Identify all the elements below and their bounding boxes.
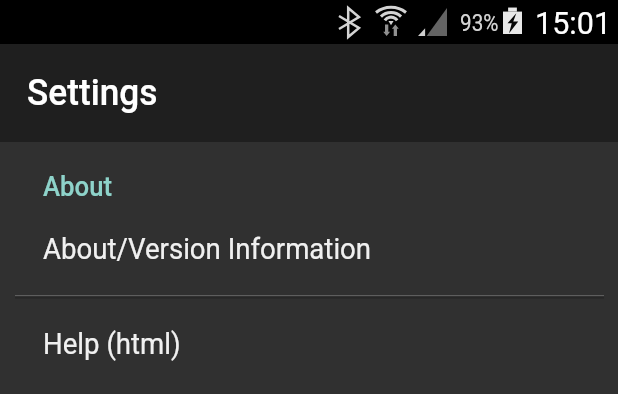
other: Wi-Fi connected (376, 7, 406, 36)
staticText: About/Version Information (43, 232, 371, 266)
button[interactable]: Help (html) (0, 299, 618, 386)
staticText: Help (html) (43, 327, 181, 361)
staticText: Settings (27, 71, 157, 114)
staticText: 15:01 (535, 5, 612, 41)
button[interactable]: About/Version Information (0, 208, 618, 295)
staticText: About (43, 171, 112, 203)
other: Battery charging 93 percent (503, 7, 522, 34)
other: Mobile signal one bar (418, 8, 447, 36)
other: Bluetooth on (339, 8, 359, 37)
staticText: 93% (460, 10, 499, 37)
